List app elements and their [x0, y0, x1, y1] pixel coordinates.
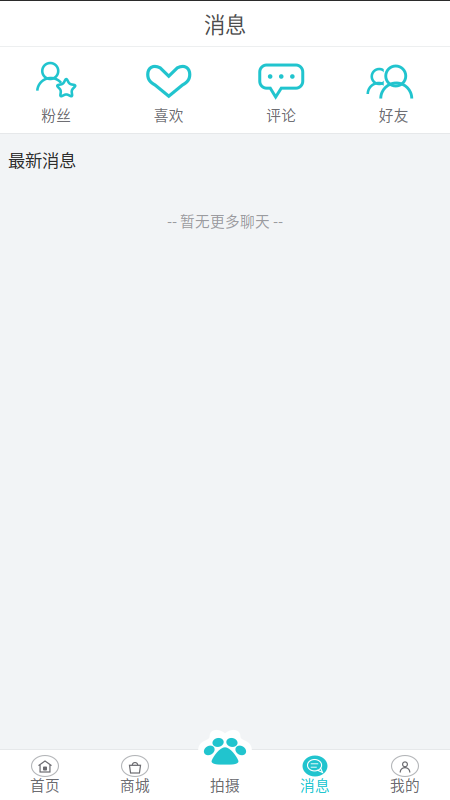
- button[interactable]: 商城: [90, 750, 180, 800]
- button[interactable]: 我的: [360, 750, 450, 800]
- button[interactable]: 消息: [270, 750, 360, 800]
- staticText: 好友: [379, 104, 409, 125]
- staticText: 商城: [120, 774, 150, 795]
- button[interactable]: 喜欢: [112, 47, 225, 133]
- button[interactable]: 拍摄: [197, 729, 253, 771]
- staticText: 首页: [30, 774, 60, 795]
- staticText: 我的: [390, 774, 420, 795]
- button[interactable]: 首页: [0, 750, 90, 800]
- button[interactable]: 粉丝: [0, 47, 112, 133]
- staticText: 最新消息: [8, 147, 76, 172]
- button[interactable]: 拍摄: [180, 750, 270, 800]
- staticText: 评论: [266, 104, 296, 125]
- button[interactable]: 好友: [337, 47, 450, 133]
- staticText: 拍摄: [210, 774, 240, 795]
- staticText: 消息: [300, 774, 330, 795]
- staticText: -- 暂无更多聊天 --: [167, 210, 283, 231]
- staticText: 喜欢: [154, 104, 184, 125]
- button[interactable]: 评论: [225, 47, 337, 133]
- staticText: 消息: [204, 8, 246, 39]
- staticText: 粉丝: [41, 104, 71, 125]
